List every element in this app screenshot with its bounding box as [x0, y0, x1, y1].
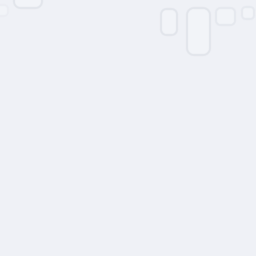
button[interactable]: More [242, 7, 254, 19]
button[interactable]: Search [216, 8, 235, 25]
button[interactable]: Filter [161, 9, 177, 35]
button[interactable]: Compose [187, 8, 210, 55]
